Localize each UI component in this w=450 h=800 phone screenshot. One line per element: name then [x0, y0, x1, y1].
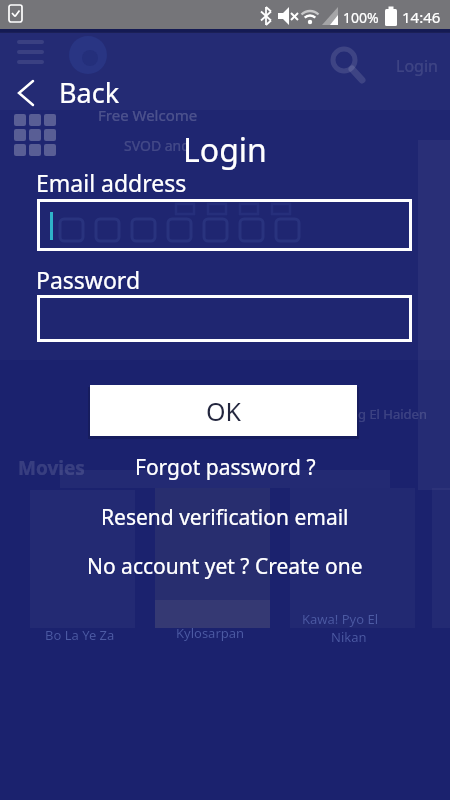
- staticText: Nikan: [331, 628, 367, 646]
- button[interactable]: [37, 199, 412, 251]
- staticText: Free Welcome: [98, 105, 198, 125]
- button[interactable]: [37, 295, 412, 342]
- staticText: Login: [396, 55, 438, 77]
- staticText: Resend verification email: [101, 503, 349, 532]
- staticText: 100%: [343, 8, 379, 27]
- staticText: Bo La Ye Za: [45, 626, 115, 644]
- staticText: Forgot password ?: [135, 453, 316, 482]
- staticText: 14:46: [402, 7, 441, 27]
- button[interactable]: Resend verification email: [101, 503, 349, 532]
- staticText: No account yet ? Create one: [87, 552, 363, 581]
- button[interactable]: No account yet ? Create one: [87, 552, 363, 581]
- staticText: Movies: [18, 455, 85, 481]
- button[interactable]: Back: [12, 74, 120, 111]
- button[interactable]: OK: [90, 385, 357, 436]
- staticText: OK: [206, 394, 242, 428]
- staticText: g El Haiden: [358, 405, 427, 423]
- staticText: Kawa! Pyo El: [302, 610, 379, 628]
- staticText: SVOD and: [124, 136, 190, 155]
- staticText: Kylosarpan: [176, 624, 245, 642]
- button[interactable]: Forgot password ?: [135, 453, 316, 482]
- staticText: Login: [183, 128, 267, 172]
- staticText: Password: [36, 264, 141, 295]
- staticText: Email address: [36, 167, 187, 198]
- staticText: Back: [59, 74, 120, 111]
